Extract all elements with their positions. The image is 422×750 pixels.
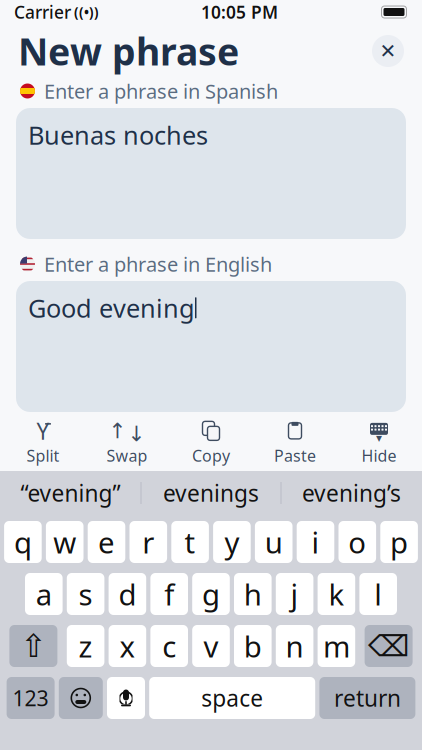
staticText: space (201, 683, 263, 713)
staticText: x (119, 626, 135, 665)
button[interactable]: return (319, 677, 415, 719)
staticText: 123 (13, 684, 49, 712)
staticText: t (185, 522, 196, 561)
staticText: ⇧ (20, 628, 47, 664)
button[interactable]: i (297, 521, 334, 563)
button[interactable]: Dictate (107, 677, 145, 719)
button[interactable]: t (171, 521, 209, 563)
staticText: Swap (106, 445, 147, 466)
button[interactable]: w (46, 521, 83, 563)
staticText: g (202, 574, 220, 613)
staticText: r (142, 522, 154, 561)
staticText: Copy (192, 445, 230, 466)
button[interactable]: Paste (253, 419, 337, 467)
button[interactable]: l (359, 573, 397, 615)
staticText: n (286, 626, 304, 665)
button[interactable]: b (234, 625, 272, 667)
button[interactable]: Emoji (59, 677, 103, 719)
staticText: k (328, 574, 344, 613)
staticText: ✕ (379, 40, 396, 62)
button[interactable]: h (234, 573, 272, 615)
button[interactable]: ↑ (85, 419, 169, 467)
button[interactable]: evenings (141, 471, 280, 515)
staticText: ⌫ (368, 629, 409, 663)
button[interactable]: u (255, 521, 292, 563)
button[interactable]: Copy (169, 419, 253, 467)
button[interactable]: o (338, 521, 376, 563)
button[interactable]: p (380, 521, 418, 563)
staticText: s (79, 574, 93, 613)
staticText: evenings (163, 478, 259, 508)
staticText: “evening” (20, 478, 120, 508)
staticText: w (53, 522, 76, 561)
staticText: b (244, 626, 262, 665)
staticText: Enter a phrase in English (44, 251, 272, 277)
staticText: f (164, 574, 174, 613)
button[interactable]: c (150, 625, 188, 667)
button[interactable]: q (4, 521, 42, 563)
button[interactable]: y (213, 521, 251, 563)
staticText: e (98, 522, 115, 561)
button[interactable]: d (109, 573, 146, 615)
staticText: i (311, 522, 319, 561)
button[interactable]: “evening” (0, 471, 140, 515)
staticText: Good evening (28, 291, 195, 325)
button[interactable]: n (276, 625, 313, 667)
button[interactable]: space (149, 677, 315, 719)
staticText: h (244, 574, 262, 613)
staticText: return (334, 683, 401, 713)
staticText: 10:05 PM (201, 0, 278, 23)
staticText: m (323, 626, 350, 665)
button[interactable]: m (318, 625, 355, 667)
button[interactable]: z (67, 625, 104, 667)
staticText: Carrier (14, 0, 71, 23)
button[interactable]: Y (1, 419, 85, 467)
button[interactable]: Close (372, 35, 404, 67)
staticText: v (203, 626, 218, 665)
staticText: ▾ (376, 431, 382, 445)
staticText: q (14, 522, 32, 561)
button[interactable]: s (67, 573, 104, 615)
staticText: Y (36, 416, 49, 446)
button[interactable]: a (25, 573, 63, 615)
staticText: j (291, 574, 299, 613)
button[interactable]: e (88, 521, 125, 563)
staticText: Hide (361, 445, 396, 466)
staticText: New phrase (18, 26, 239, 76)
button[interactable]: Delete (365, 625, 413, 667)
staticText: ((•)) (71, 3, 99, 21)
staticText: evening’s (302, 478, 401, 508)
button[interactable]: Buenas noches (0, 108, 422, 239)
staticText: y (224, 522, 239, 561)
staticText: Enter a phrase in Spanish (44, 78, 278, 104)
staticText: ↑ (108, 419, 126, 443)
button[interactable]: evening’s (281, 471, 421, 515)
staticText: l (374, 574, 382, 613)
staticText: d (118, 574, 136, 613)
button[interactable]: Good evening (0, 281, 422, 412)
staticText: Split (26, 445, 59, 466)
staticText: Buenas noches (28, 118, 208, 152)
staticText: u (265, 522, 283, 561)
button[interactable]: Shift (9, 625, 57, 667)
button[interactable]: r (129, 521, 167, 563)
button[interactable]: 123 (7, 677, 55, 719)
staticText: ↓ (127, 422, 145, 446)
button[interactable]: g (192, 573, 230, 615)
button[interactable]: k (318, 573, 355, 615)
button[interactable]: v (192, 625, 230, 667)
staticText: Paste (274, 445, 316, 466)
button[interactable]: f (150, 573, 188, 615)
staticText: p (390, 522, 408, 561)
staticText: a (36, 574, 52, 613)
button[interactable]: ▾ (337, 419, 421, 467)
staticText: c (162, 626, 176, 665)
button[interactable]: j (276, 573, 313, 615)
staticText: z (79, 626, 93, 665)
button[interactable]: x (109, 625, 146, 667)
staticText: o (348, 522, 366, 561)
